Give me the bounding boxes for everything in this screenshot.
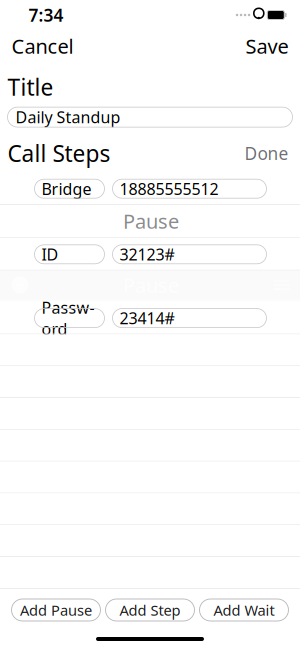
staticText: Add Pause xyxy=(20,600,92,620)
staticText: Cancel xyxy=(11,33,73,59)
staticText: Call Steps xyxy=(7,138,110,168)
button[interactable]: Done xyxy=(240,139,292,168)
staticText: Done xyxy=(244,142,288,165)
button[interactable]: Password xyxy=(0,302,300,334)
staticText: Daily Standup xyxy=(15,106,120,128)
staticText: 18885555512 xyxy=(119,178,218,199)
staticText: Add Wait xyxy=(213,600,274,620)
staticText: Password xyxy=(41,297,94,339)
staticText: 7:34 xyxy=(28,3,63,26)
staticText: Save xyxy=(245,33,288,59)
button[interactable]: Save xyxy=(236,27,297,65)
button[interactable]: Cancel xyxy=(2,27,82,65)
staticText: Pause xyxy=(123,208,179,234)
button[interactable]: Add Step xyxy=(105,599,194,621)
button[interactable]: Pause xyxy=(0,205,300,237)
button[interactable]: ID xyxy=(0,238,300,270)
staticText: 32123# xyxy=(119,244,174,265)
staticText: Add Step xyxy=(119,600,180,620)
button[interactable]: Add Wait xyxy=(199,599,288,621)
button[interactable]: Add Pause xyxy=(11,599,100,621)
staticText: Bridge xyxy=(41,178,91,199)
staticText: Title xyxy=(7,72,53,102)
staticText: ID xyxy=(41,244,58,265)
button[interactable]: Bridge xyxy=(0,172,300,204)
staticText: 23414# xyxy=(119,307,174,329)
